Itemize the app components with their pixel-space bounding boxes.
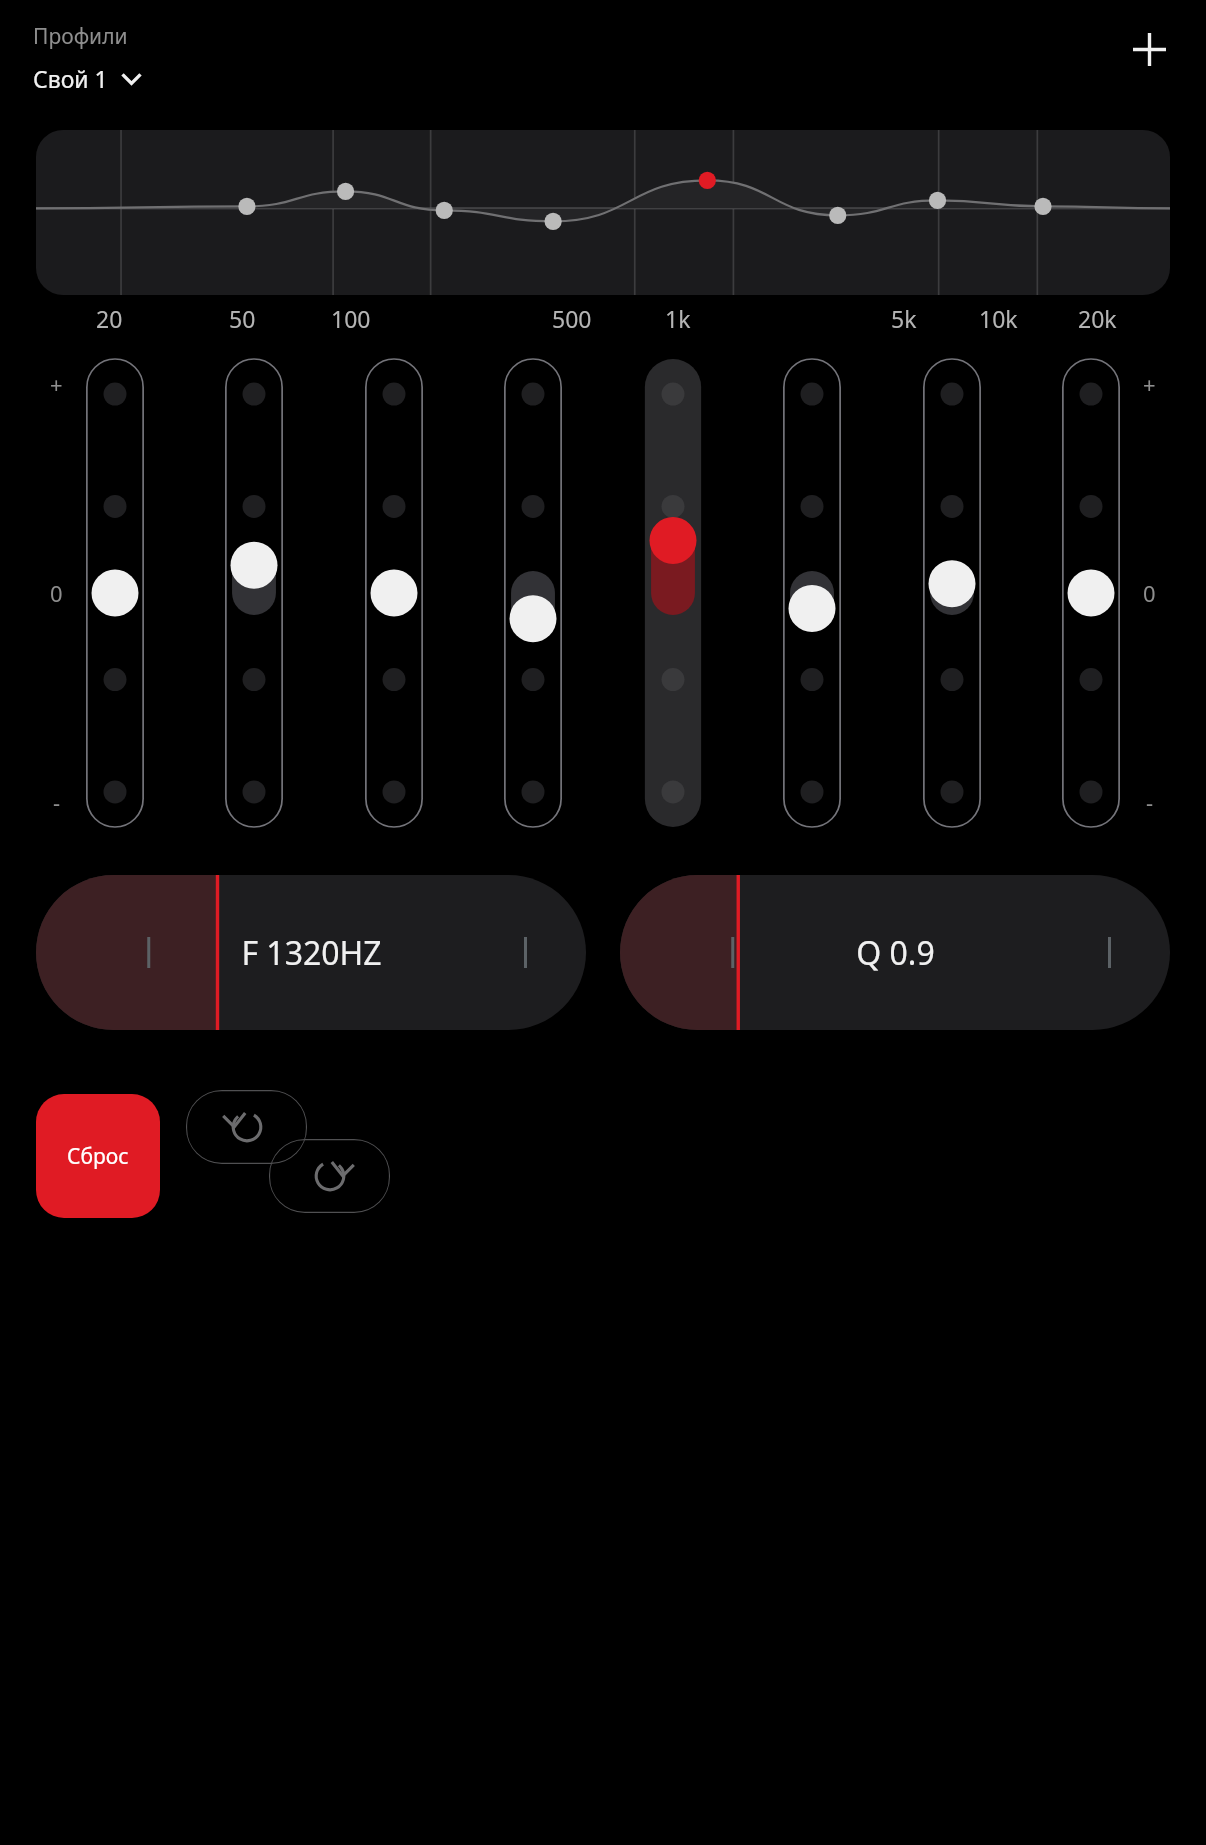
button[interactable]: Gain band slider [783,359,841,827]
staticText: Свой 1 [33,63,108,94]
staticText: - [53,787,61,817]
button[interactable]: Gain band slider [644,359,702,827]
button[interactable]: Gain band slider [504,359,562,827]
button[interactable]: Undo [186,1090,307,1164]
button[interactable]: Gain band slider [225,359,283,827]
staticText: Сброс [67,1142,129,1171]
button[interactable]: Q 0.9 [620,875,1170,1030]
button[interactable]: F 1320HZ [36,875,586,1030]
staticText: + [50,369,63,399]
staticText: - [1146,787,1154,817]
staticText: F 1320HZ [241,931,382,975]
button[interactable]: Gain band slider [1062,359,1120,827]
button[interactable]: Equalizer response curve [36,130,1170,295]
button[interactable]: Add profile [1118,18,1180,80]
button[interactable]: Redo [269,1139,390,1213]
staticText: Профили [33,22,128,51]
staticText: 20 [96,303,123,334]
staticText: 10k [979,303,1018,334]
staticText: + [1143,369,1156,399]
staticText: 50 [229,303,256,334]
staticText: 0 [1143,578,1156,608]
button[interactable]: Сброс [36,1094,160,1218]
staticText: 500 [552,303,592,334]
button[interactable]: Gain band slider [86,359,144,827]
button[interactable]: Gain band slider [923,359,981,827]
staticText: Q 0.9 [856,931,935,975]
staticText: 20k [1078,303,1117,334]
staticText: 100 [331,303,371,334]
button[interactable]: Свой 1 [33,61,152,96]
staticText: 0 [50,578,63,608]
staticText: 5k [891,303,917,334]
staticText: 1k [665,303,691,334]
button[interactable]: Gain band slider [365,359,423,827]
